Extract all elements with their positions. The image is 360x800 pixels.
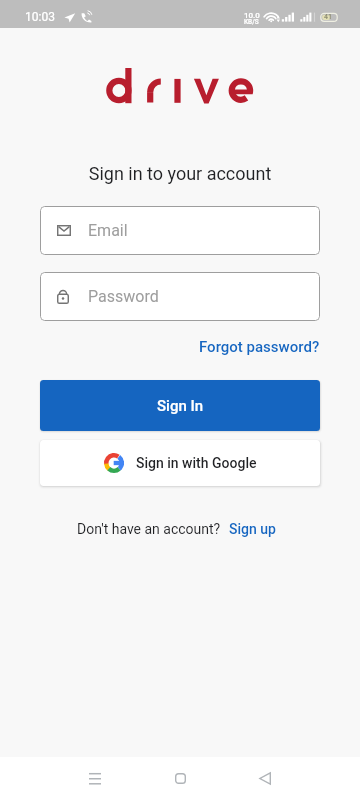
staticText: Forgot password? (199, 338, 320, 356)
button[interactable]: Sign up (229, 521, 276, 537)
staticText: KB/S (244, 18, 259, 26)
staticText: Password (88, 287, 159, 306)
staticText: Sign in with Google (136, 455, 257, 471)
staticText: Sign In (157, 397, 204, 415)
button[interactable]: Sign In (40, 380, 320, 431)
staticText: Sign in to your account (0, 163, 360, 184)
button[interactable]: Password (40, 272, 320, 321)
button[interactable]: Forgot password? (199, 338, 320, 356)
button[interactable]: Home (159, 757, 202, 800)
button[interactable]: Email (40, 206, 320, 255)
staticText: Don't have an account? (77, 521, 221, 537)
staticText: 10:03 (25, 10, 55, 24)
button[interactable]: Sign in with Google (40, 440, 320, 486)
staticText: Sign up (229, 521, 276, 537)
staticText: Email (88, 221, 128, 240)
staticText: 10.0 (244, 11, 260, 20)
button[interactable]: Back (243, 757, 286, 800)
button[interactable]: Recent apps (73, 757, 116, 800)
staticText: 41 (324, 13, 332, 21)
